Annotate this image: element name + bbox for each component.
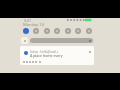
button[interactable]: Account — [21, 37, 28, 44]
staticText: Monday 14 — [23, 22, 44, 27]
button[interactable]: Story 5 — [65, 28, 71, 34]
button[interactable]: Search — [30, 38, 93, 43]
staticText: A place home every — [30, 53, 63, 58]
button[interactable]: Story 7 — [86, 28, 92, 34]
button[interactable]: Story 1 — [23, 28, 29, 34]
staticText: 9:41 — [24, 18, 32, 23]
button[interactable]: Story 6 — [75, 28, 81, 34]
button[interactable]: Story 4 — [54, 28, 60, 34]
button[interactable]: Story 3 — [44, 28, 50, 34]
button[interactable]: Story 2 — [33, 28, 39, 34]
button[interactable]: Inbox · hello@mail.c — [20, 46, 94, 65]
staticText: Inbox · hello@mail.c — [30, 50, 59, 54]
